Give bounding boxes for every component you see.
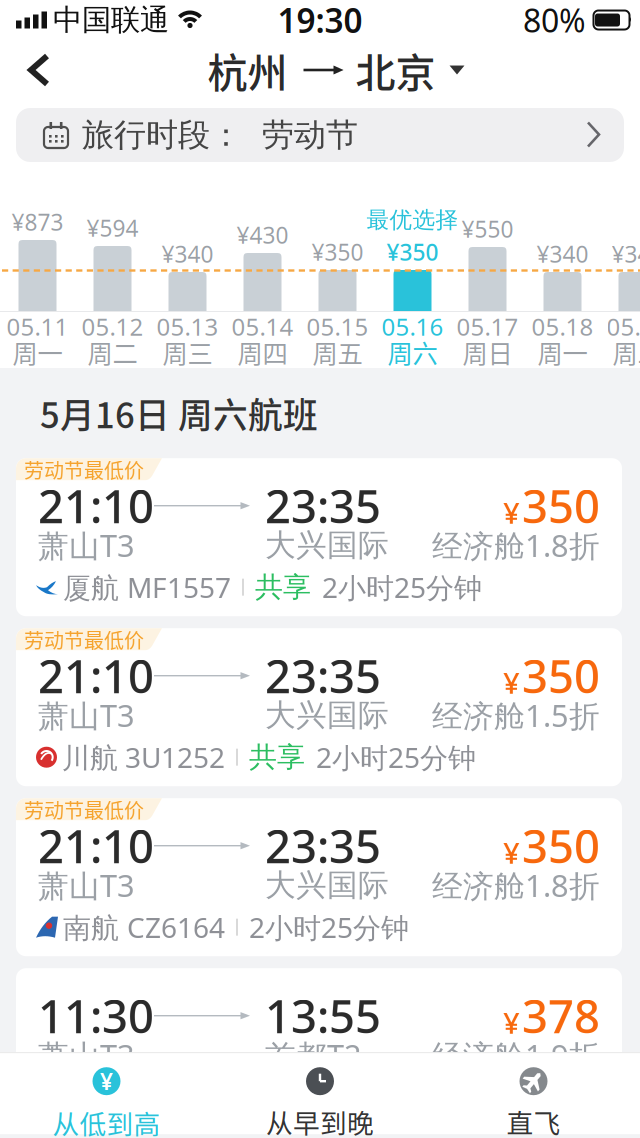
staticText: 21:10 bbox=[38, 646, 154, 706]
staticText: 杭州 bbox=[207, 41, 287, 99]
staticText: 首都T2 bbox=[265, 1035, 362, 1075]
button[interactable] bbox=[0, 54, 70, 86]
button[interactable]: ¥340 bbox=[525, 162, 600, 311]
staticText: 05.18 bbox=[531, 311, 593, 342]
staticText: 旅行时段： 劳动节 bbox=[82, 115, 358, 155]
staticText: 从低到高 bbox=[52, 1103, 160, 1138]
staticText: 周一 bbox=[537, 334, 587, 370]
staticText: 2小时25分钟 bbox=[316, 739, 476, 776]
staticText: 周三 bbox=[162, 334, 212, 370]
staticText: 11:30 bbox=[38, 986, 154, 1046]
staticText: 350 bbox=[522, 816, 600, 876]
staticText: 劳动节最低价 bbox=[24, 625, 144, 654]
staticText: 大兴国际 bbox=[265, 696, 389, 734]
staticText: 23:35 bbox=[265, 646, 381, 706]
staticText: ¥430 bbox=[236, 220, 288, 250]
button[interactable]: ¥873 bbox=[0, 162, 75, 311]
staticText: 2小时25分钟 bbox=[255, 1079, 415, 1116]
staticText: 周日 bbox=[462, 334, 512, 370]
button[interactable]: ¥340 bbox=[600, 162, 640, 311]
staticText: ¥350 bbox=[311, 237, 363, 267]
staticText: 萧山T3 bbox=[38, 1035, 135, 1075]
staticText: 经济舱1.9折 bbox=[432, 1035, 600, 1075]
staticText: ¥873 bbox=[11, 207, 63, 237]
staticText: 05.14 bbox=[231, 311, 293, 342]
staticText: 经济舱1.8折 bbox=[432, 525, 600, 565]
staticText: 350 bbox=[522, 646, 600, 706]
staticText: 周一 bbox=[12, 334, 62, 370]
staticText: ¥ bbox=[100, 1066, 113, 1096]
staticText: 05.13 bbox=[156, 311, 218, 342]
button[interactable]: ¥594 bbox=[75, 162, 150, 311]
staticText: 大兴国际 bbox=[265, 526, 389, 564]
button[interactable]: 劳动节最低价 bbox=[16, 628, 622, 786]
staticText: ¥594 bbox=[86, 213, 138, 243]
staticText: 从早到晚 bbox=[266, 1102, 374, 1138]
staticText: ¥350 bbox=[386, 237, 438, 267]
staticText: ¥ bbox=[503, 1003, 520, 1042]
staticText: 350 bbox=[522, 476, 600, 536]
staticText: 周六 bbox=[387, 334, 437, 370]
staticText: 南航 CZ6164 bbox=[63, 909, 225, 946]
button[interactable]: 11:30 bbox=[16, 968, 622, 1126]
button[interactable]: 杭州 bbox=[191, 41, 448, 99]
staticText: 2小时25分钟 bbox=[249, 909, 409, 946]
staticText: ¥340 bbox=[611, 239, 640, 269]
staticText: 经济舱1.5折 bbox=[432, 695, 600, 735]
button[interactable]: ¥ bbox=[0, 1066, 213, 1138]
staticText: 萧山T3 bbox=[38, 525, 135, 565]
staticText: 05.19 bbox=[606, 311, 640, 342]
staticText: 05.15 bbox=[306, 311, 368, 342]
staticText: 直飞 bbox=[506, 1102, 560, 1138]
button[interactable]: 最优选择 bbox=[375, 162, 450, 311]
staticText: 经济舱1.8折 bbox=[432, 865, 600, 905]
button[interactable]: ¥340 bbox=[150, 162, 225, 311]
staticText: 5月16日 周六航班 bbox=[40, 388, 318, 438]
staticText: 共享 bbox=[249, 740, 305, 774]
button[interactable]: 劳动节最低价 bbox=[16, 798, 622, 956]
button[interactable]: 从早到晚 bbox=[213, 1067, 427, 1138]
staticText: 19:30 bbox=[277, 0, 362, 42]
staticText: 23:35 bbox=[265, 816, 381, 876]
staticText: ¥340 bbox=[536, 239, 588, 269]
staticText: 劳动节最低价 bbox=[24, 795, 144, 824]
staticText: 萧山T3 bbox=[38, 865, 135, 905]
staticText: 大兴国际 bbox=[265, 866, 389, 904]
staticText: 23:35 bbox=[265, 476, 381, 536]
staticText: 厦航 MF8556 bbox=[63, 1079, 231, 1116]
staticText: 周二 bbox=[87, 334, 137, 370]
staticText: 共享 bbox=[255, 570, 311, 604]
staticText: 北京 bbox=[355, 41, 435, 99]
staticText: 05.16 bbox=[381, 311, 443, 342]
staticText: 最优选择 bbox=[366, 206, 458, 234]
button[interactable]: ¥550 bbox=[450, 162, 525, 311]
button[interactable]: 直飞 bbox=[427, 1067, 640, 1138]
button[interactable]: ¥430 bbox=[225, 162, 300, 311]
staticText: 厦航 MF1557 bbox=[63, 569, 231, 606]
button[interactable]: ¥350 bbox=[300, 162, 375, 311]
staticText: 80% bbox=[523, 0, 586, 41]
staticText: 萧山T3 bbox=[38, 695, 135, 735]
staticText: 周四 bbox=[237, 334, 287, 370]
staticText: ¥ bbox=[503, 493, 520, 532]
staticText: 2小时25分钟 bbox=[322, 569, 482, 606]
staticText: ¥550 bbox=[461, 214, 513, 244]
staticText: 05.11 bbox=[6, 311, 68, 342]
staticText: 劳动节最低价 bbox=[24, 455, 144, 484]
staticText: 中国联通 bbox=[53, 2, 169, 38]
staticText: 周二 bbox=[612, 334, 640, 370]
button[interactable]: 旅行时段： 劳动节 bbox=[16, 108, 624, 162]
staticText: 周五 bbox=[312, 334, 362, 370]
staticText: 21:10 bbox=[38, 476, 154, 536]
staticText: 川航 3U1252 bbox=[62, 739, 225, 776]
staticText: 05.12 bbox=[81, 311, 143, 342]
staticText: 05.17 bbox=[456, 311, 518, 342]
staticText: ¥340 bbox=[161, 239, 213, 269]
staticText: ¥ bbox=[503, 663, 520, 702]
staticText: ¥ bbox=[503, 833, 520, 872]
staticText: 21:10 bbox=[38, 816, 154, 876]
staticText: 378 bbox=[522, 986, 600, 1046]
button[interactable]: 劳动节最低价 bbox=[16, 458, 622, 616]
staticText: 13:55 bbox=[265, 986, 381, 1046]
